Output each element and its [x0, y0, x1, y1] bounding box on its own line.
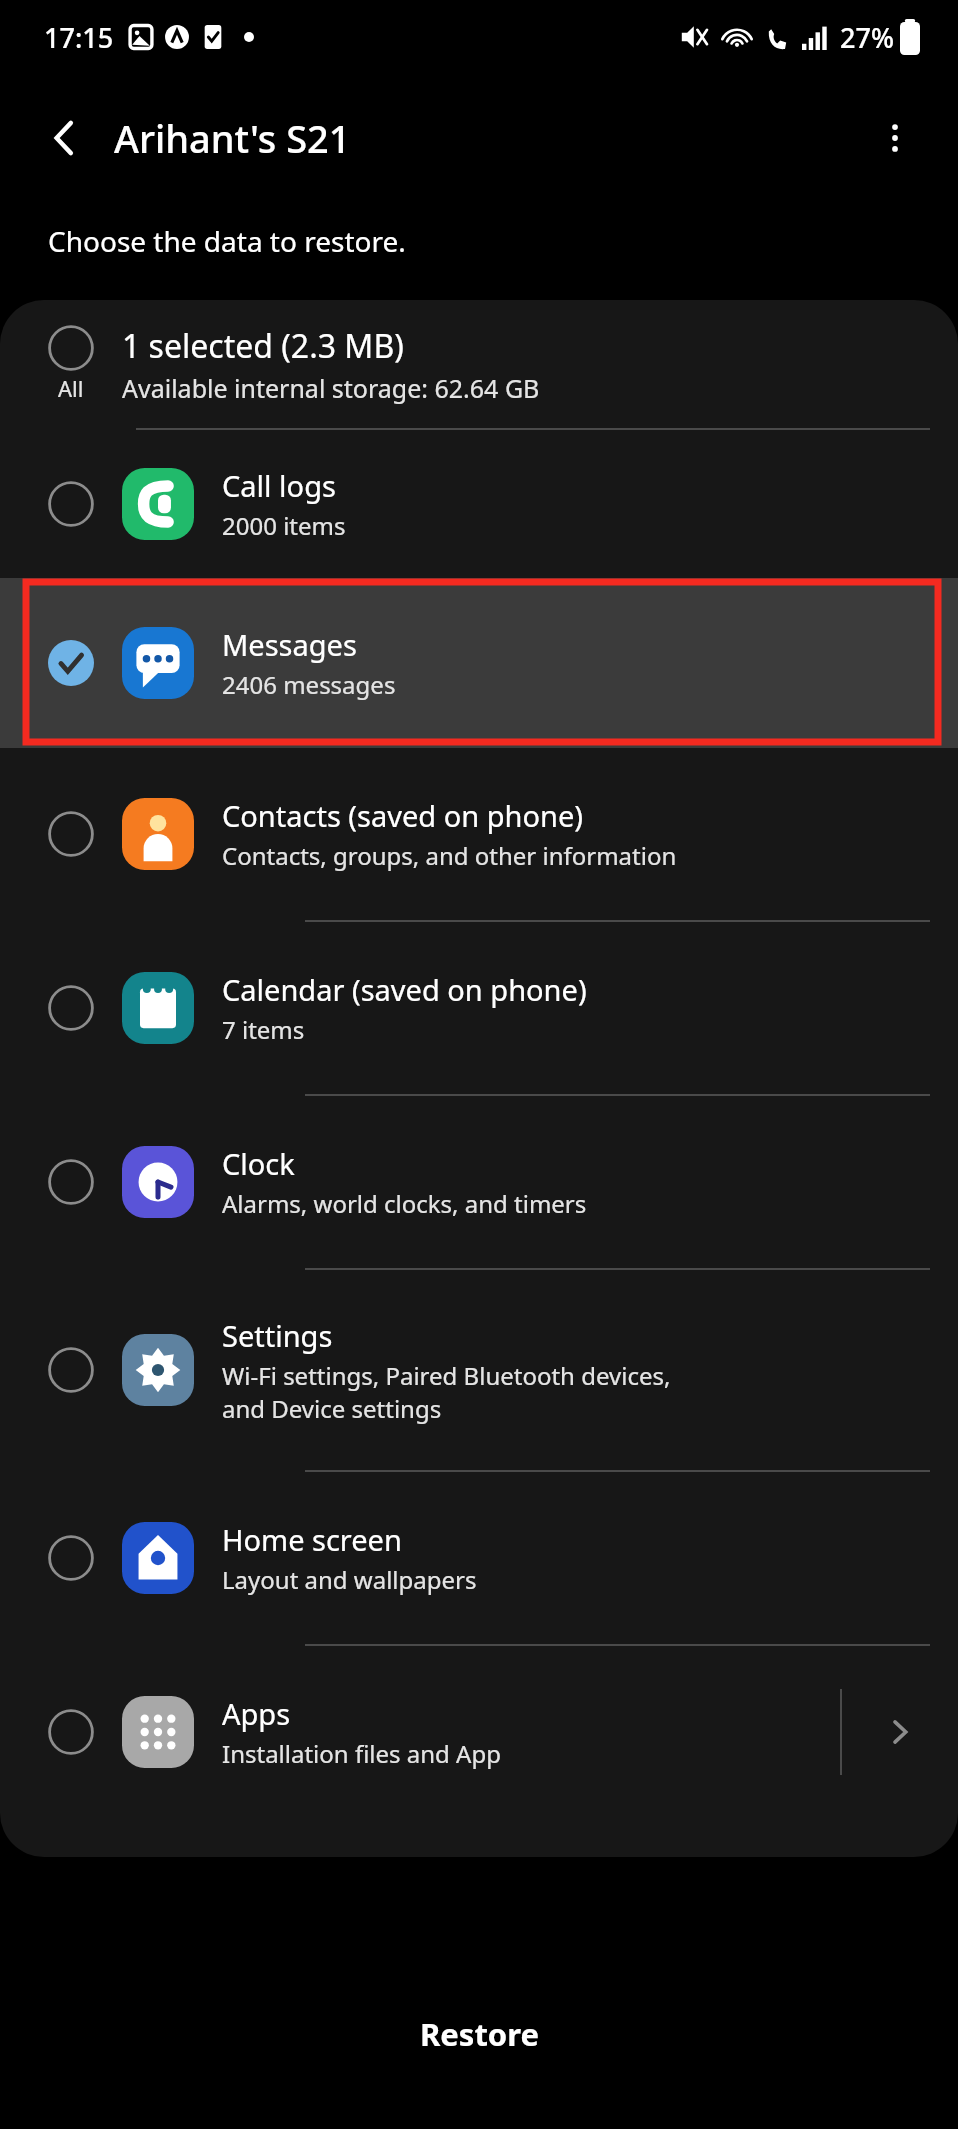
- button[interactable]: Clock: [0, 1096, 958, 1268]
- button[interactable]: Restore: [0, 1939, 958, 2129]
- staticText: Layout and wallpapers: [222, 1563, 477, 1596]
- staticText: Messages: [222, 625, 357, 664]
- staticText: Installation files and App: [222, 1737, 501, 1770]
- staticText: Alarms, world clocks, and timers: [222, 1187, 587, 1220]
- staticText: Choose the data to restore.: [48, 222, 406, 260]
- staticText: Contacts (saved on phone): [222, 796, 583, 835]
- staticText: All: [58, 373, 84, 403]
- button[interactable]: All: [0, 300, 958, 428]
- button[interactable]: Contacts (saved on phone): [0, 748, 958, 920]
- staticText: Apps: [222, 1694, 291, 1733]
- staticText: 2406 messages: [222, 668, 396, 701]
- staticText: Calendar (saved on phone): [222, 970, 587, 1009]
- staticText: Settings: [222, 1316, 333, 1355]
- button[interactable]: Call logs: [0, 430, 958, 578]
- staticText: Available internal storage: 62.64 GB: [122, 371, 540, 405]
- staticText: Clock: [222, 1144, 295, 1183]
- staticText: Contacts, groups, and other information: [222, 839, 677, 872]
- staticText: Home screen: [222, 1520, 402, 1559]
- staticText: 7 items: [222, 1013, 305, 1046]
- button[interactable]: Settings: [0, 1270, 958, 1470]
- button[interactable]: Back: [28, 101, 102, 175]
- staticText: 1 selected (2.3 MB): [122, 324, 404, 368]
- staticText: 27%: [840, 19, 894, 56]
- staticText: Wi-Fi settings, Paired Bluetooth devices…: [222, 1359, 671, 1392]
- button[interactable]: Messages: [0, 578, 958, 748]
- staticText: Restore: [420, 2013, 539, 2055]
- staticText: and Device settings: [222, 1392, 442, 1425]
- button[interactable]: Calendar (saved on phone): [0, 922, 958, 1094]
- button[interactable]: Open Apps selection: [842, 1646, 958, 1818]
- button[interactable]: Apps: [0, 1646, 958, 1818]
- staticText: Arihant's S21: [114, 112, 351, 164]
- staticText: Call logs: [222, 466, 336, 505]
- staticText: 2000 items: [222, 509, 346, 542]
- button[interactable]: Home screen: [0, 1472, 958, 1644]
- staticText: 17:15: [44, 19, 114, 56]
- button[interactable]: More options: [858, 101, 932, 175]
